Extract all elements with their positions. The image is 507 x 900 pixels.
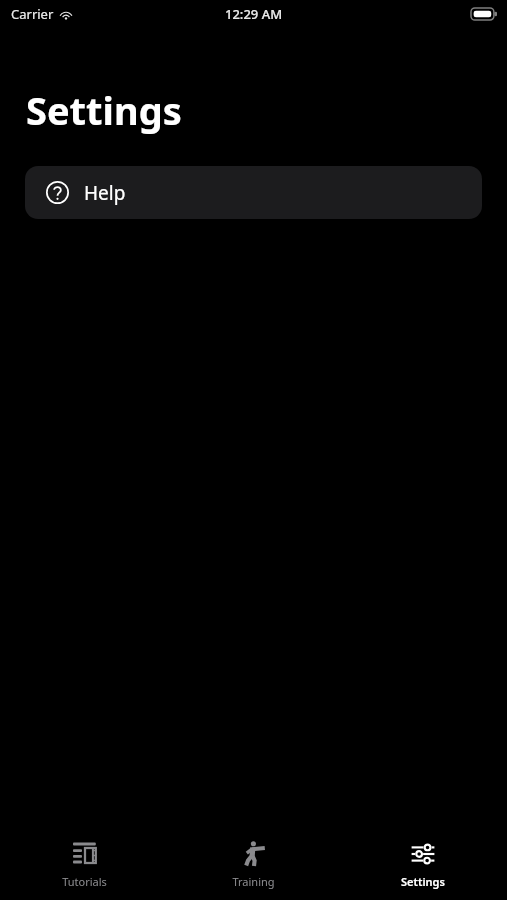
staticText: Training <box>232 874 275 889</box>
staticText: Help <box>84 180 126 206</box>
button[interactable]: Tutorials <box>0 833 169 895</box>
staticText: 12:29 AM <box>225 5 283 23</box>
button[interactable]: Settings <box>338 833 507 895</box>
staticText: Carrier <box>11 5 54 23</box>
button[interactable]: Training <box>169 833 338 895</box>
button[interactable]: Help <box>25 166 482 219</box>
staticText: Tutorials <box>62 874 107 889</box>
staticText: Settings <box>401 874 445 889</box>
staticText: Settings <box>26 84 182 136</box>
